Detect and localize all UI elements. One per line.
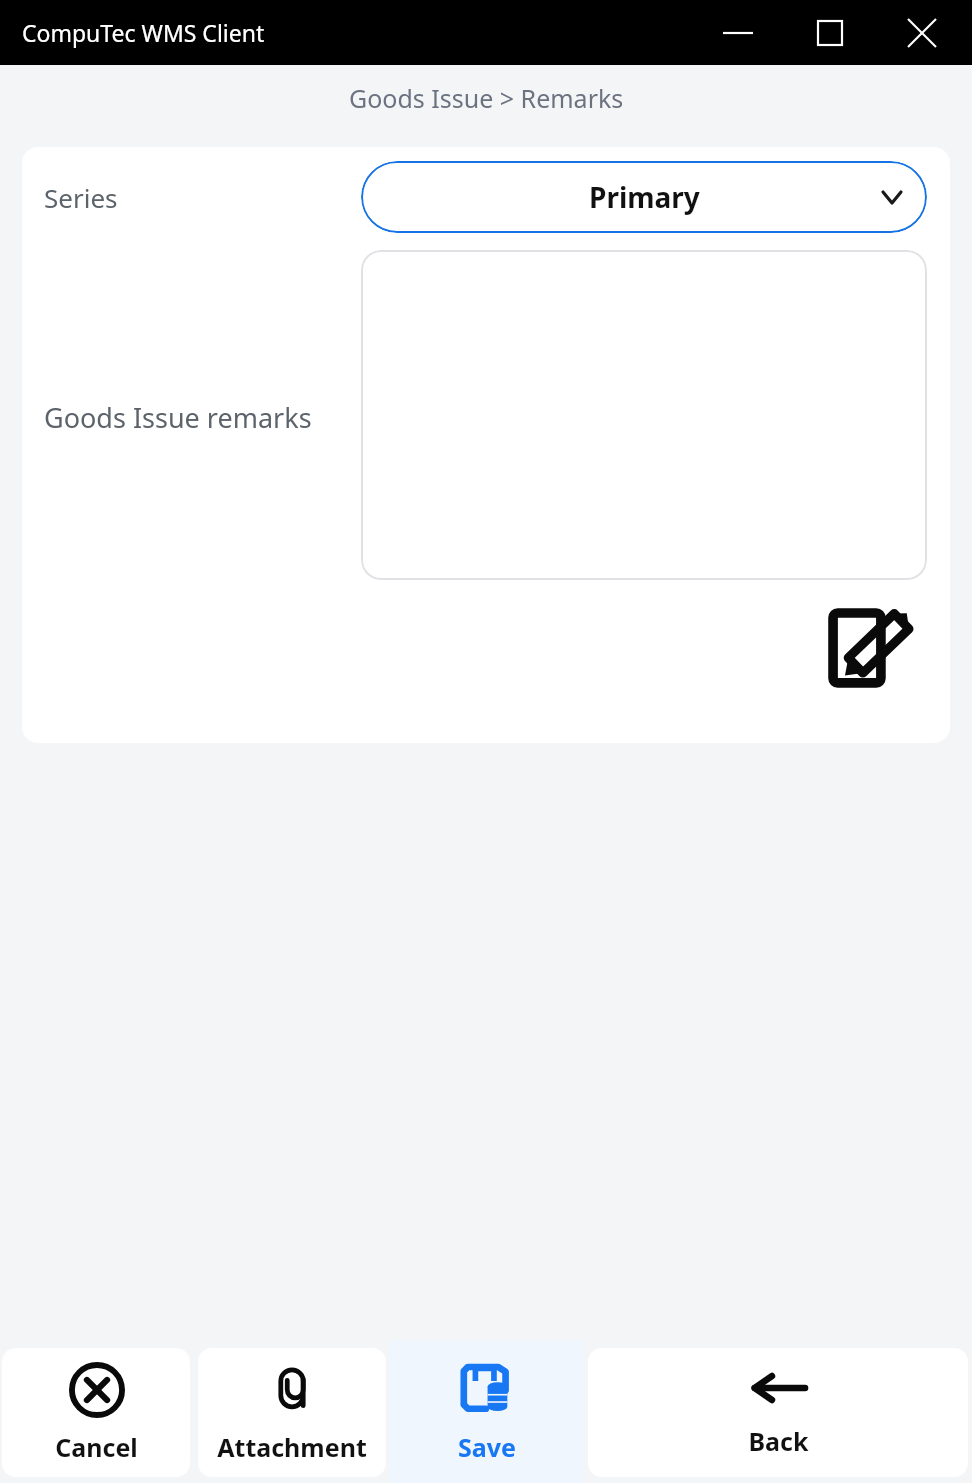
button[interactable]: Save: [389, 1340, 584, 1483]
button[interactable]: Primary: [361, 161, 927, 233]
button[interactable]: Minimize: [692, 1, 784, 65]
button[interactable]: Edit remarks: [826, 599, 922, 695]
staticText: Goods Issue > Remarks: [349, 81, 624, 115]
staticText: Save: [458, 1430, 516, 1464]
staticText: Primary: [589, 178, 700, 216]
button[interactable]: Close: [876, 1, 968, 65]
staticText: CompuTec WMS Client: [22, 17, 265, 48]
staticText: Back: [748, 1424, 809, 1458]
staticText: Attachment: [217, 1430, 367, 1464]
button[interactable]: Attachment: [198, 1348, 386, 1477]
button[interactable]: [361, 250, 927, 580]
button[interactable]: Back: [588, 1348, 968, 1477]
button[interactable]: Maximize: [784, 1, 876, 65]
button[interactable]: Cancel: [2, 1348, 190, 1477]
staticText: Cancel: [55, 1430, 138, 1464]
staticText: Series: [44, 180, 118, 215]
staticText: Goods Issue remarks: [44, 399, 312, 436]
